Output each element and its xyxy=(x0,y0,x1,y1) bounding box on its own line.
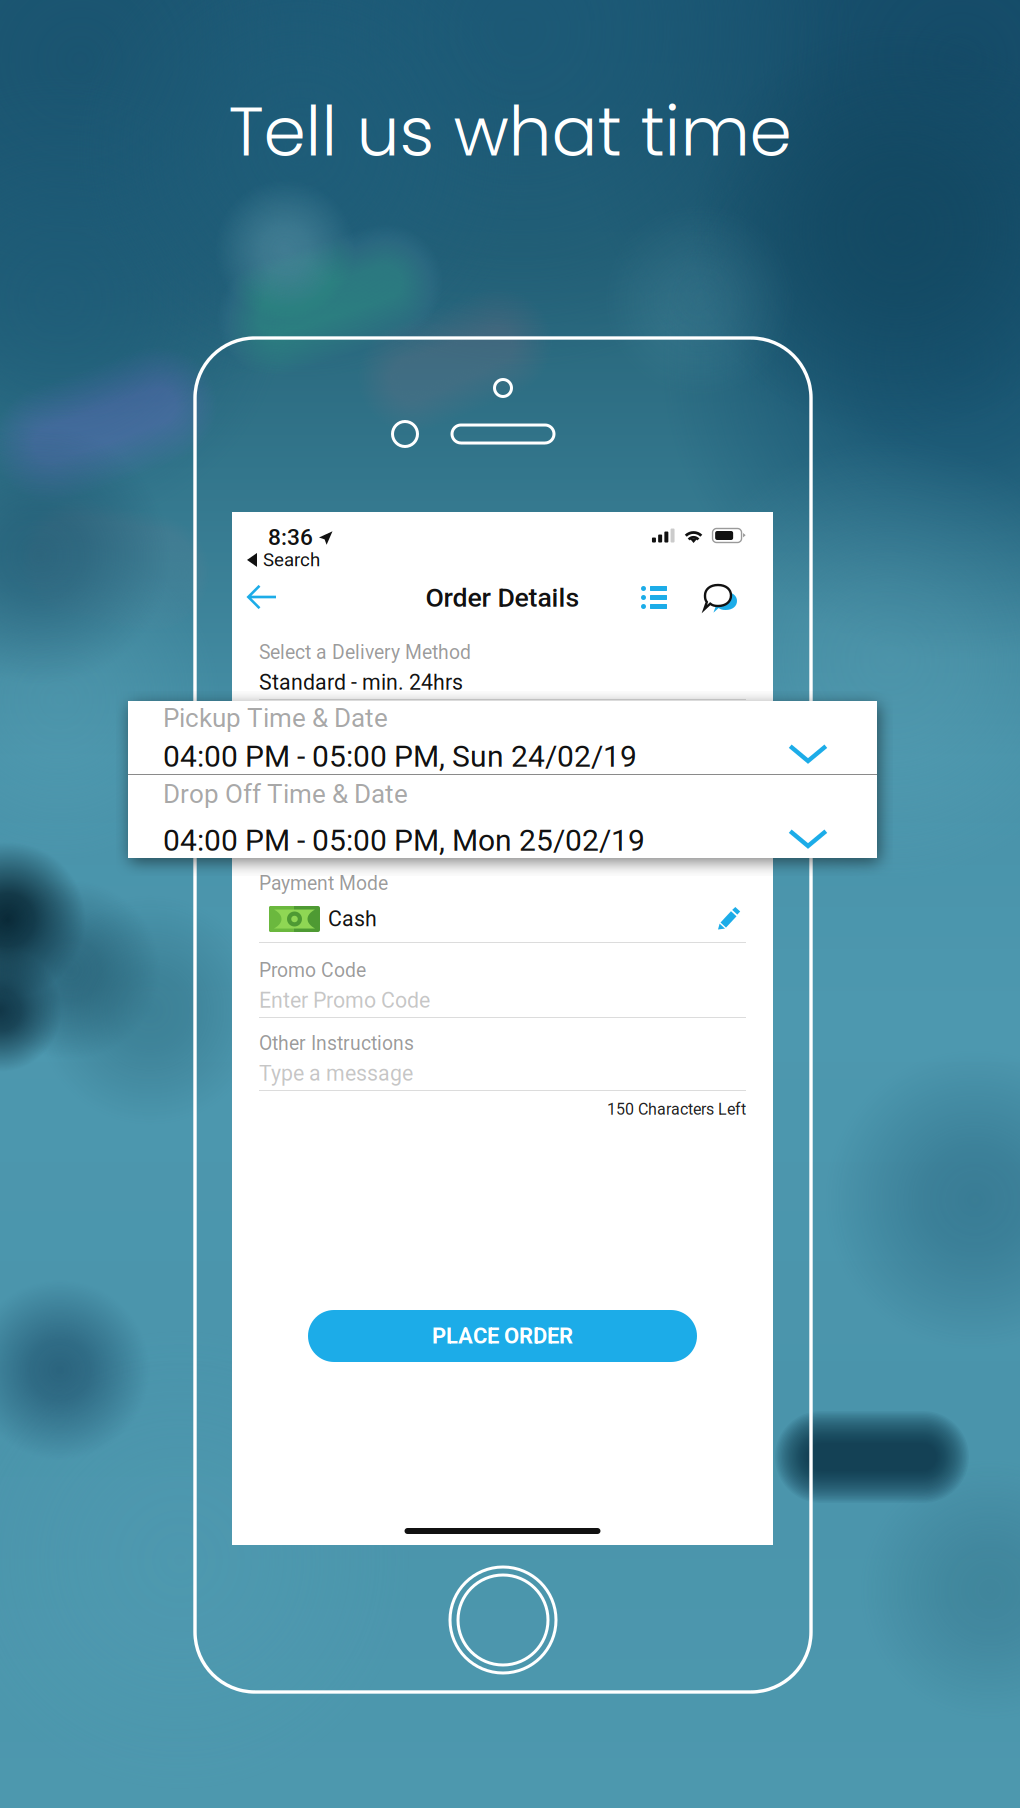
staticText: Search xyxy=(263,549,320,571)
button[interactable]: Order items xyxy=(632,577,676,618)
button[interactable]: Back xyxy=(236,574,287,620)
button[interactable]: Chat xyxy=(699,578,747,620)
staticText: Select a Delivery Method xyxy=(259,641,471,664)
staticText: Enter Promo Code xyxy=(259,988,430,1013)
staticText: Pickup Time & Date xyxy=(163,703,388,733)
staticText: Promo Code xyxy=(259,959,366,982)
staticText: 04:00 PM - 05:00 PM, Mon 25/02/19 xyxy=(163,823,645,858)
button[interactable]: PLACE ORDER xyxy=(308,1310,697,1362)
staticText: 04:00 PM - 05:00 PM, Sun 24/02/19 xyxy=(259,738,596,763)
staticText: Order Details xyxy=(425,582,579,613)
button[interactable]: Edit payment mode xyxy=(718,907,741,930)
staticText: Pickup Time & Date xyxy=(259,709,428,732)
staticText: Payment Mode xyxy=(259,872,388,895)
staticText: Type a message xyxy=(259,1061,413,1086)
staticText: 04:00 PM - 05:00 PM, Mon 25/02/19 xyxy=(259,806,602,831)
staticText: Other Instructions xyxy=(259,1032,414,1055)
staticText: Tell us what time xyxy=(228,84,791,179)
staticText: Drop Off Time & Date xyxy=(259,777,442,800)
staticText: 150 Characters Left xyxy=(607,1100,746,1119)
staticText: Cash xyxy=(328,906,377,931)
staticText: Drop Off Time & Date xyxy=(163,779,408,809)
staticText: PLACE ORDER xyxy=(432,1323,573,1349)
staticText: 04:00 PM - 05:00 PM, Sun 24/02/19 xyxy=(163,739,637,774)
staticText: Standard - min. 24hrs xyxy=(259,670,463,695)
staticText: 8:36 xyxy=(268,524,313,551)
